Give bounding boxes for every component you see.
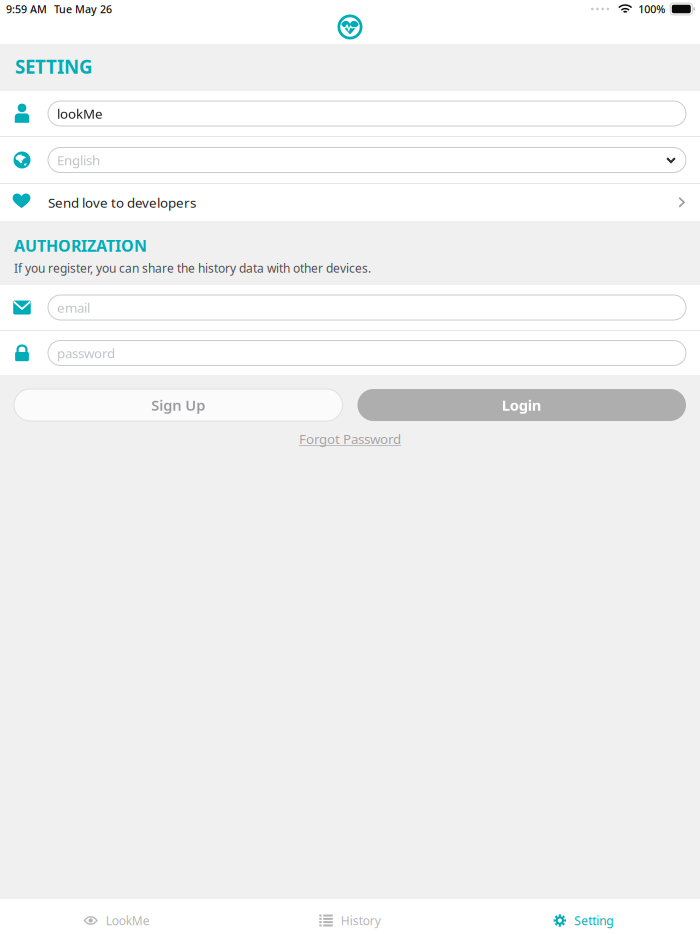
- staticText: password: [57, 344, 115, 362]
- staticText: 9:59 AM: [6, 2, 47, 16]
- button[interactable]: Setting: [467, 899, 700, 934]
- staticText: Sign Up: [151, 395, 205, 415]
- staticText: AUTHORIZATION: [14, 235, 147, 256]
- button[interactable]: LookMe: [0, 899, 233, 934]
- staticText: Send love to developers: [48, 194, 196, 211]
- staticText: Setting: [574, 912, 613, 928]
- staticText: Forgot Password: [299, 430, 401, 448]
- button[interactable]: Login: [357, 389, 686, 421]
- staticText: Login: [502, 395, 542, 415]
- staticText: History: [341, 912, 381, 928]
- staticText: lookMe: [57, 105, 103, 122]
- button[interactable]: Send love to developers: [0, 184, 700, 221]
- staticText: If you register, you can share the histo…: [14, 260, 371, 276]
- staticText: Tue May 26: [54, 2, 112, 16]
- staticText: SETTING: [15, 54, 93, 79]
- staticText: 100%: [638, 2, 665, 16]
- staticText: email: [57, 299, 90, 316]
- button[interactable]: Forgot Password: [0, 430, 700, 448]
- staticText: English: [57, 151, 100, 169]
- button[interactable]: History: [233, 899, 467, 934]
- staticText: LookMe: [106, 912, 150, 928]
- button[interactable]: Sign Up: [14, 389, 342, 421]
